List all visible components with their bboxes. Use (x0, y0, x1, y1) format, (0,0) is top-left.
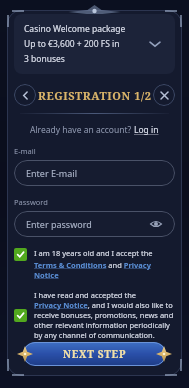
staticText: E-mail (14, 146, 36, 156)
staticText: REGISTRATION 1/2 (38, 88, 152, 103)
staticText: NEXT STEP (63, 347, 127, 361)
button[interactable]: NEXT STEP (23, 342, 166, 366)
staticText: Log in (134, 124, 159, 136)
staticText: Enter E-mail (26, 167, 77, 179)
button[interactable]: Casino Welcome package (14, 14, 175, 74)
other: Expand bonuses (145, 34, 165, 54)
staticText: I am 18 years old and I accept the (34, 248, 153, 258)
button[interactable]: Back (14, 84, 36, 106)
staticText: I have read and accepted the Privacy Not… (34, 290, 175, 340)
staticText: 3 bonuses (24, 53, 65, 65)
button[interactable]: Checked (14, 290, 175, 340)
other: Show password (149, 217, 163, 231)
button[interactable]: Enter password (14, 211, 175, 237)
button[interactable]: Enter E-mail (14, 160, 175, 186)
staticText: Casino Welcome package (24, 23, 126, 35)
staticText: Password (14, 197, 48, 207)
button[interactable]: Close (153, 84, 175, 106)
staticText: Already have an account? (30, 124, 134, 136)
button[interactable]: Checked (14, 309, 27, 322)
button[interactable]: Checked (14, 248, 27, 261)
staticText: Up to €3,600 + 200 FS in (24, 38, 120, 50)
button[interactable]: Checked (14, 248, 175, 280)
button[interactable]: Log in (134, 124, 159, 136)
staticText: Enter password (26, 218, 92, 230)
staticText: Terms & Conditions and Privacy Notice (34, 260, 175, 280)
